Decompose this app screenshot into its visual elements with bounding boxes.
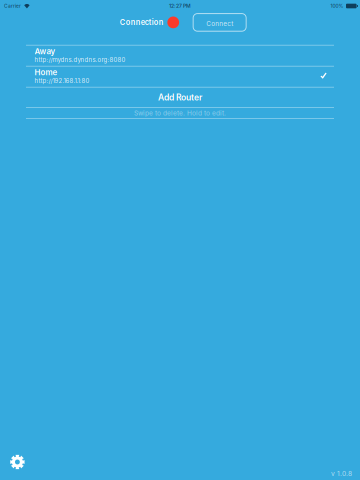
button[interactable]: Connect — [193, 14, 246, 31]
staticText: Away — [34, 46, 55, 56]
button[interactable]: Away — [26, 46, 334, 66]
staticText: Home — [34, 67, 57, 77]
staticText: http://mydns.dyndns.org:8080 — [34, 56, 125, 63]
staticText: 100% — [330, 3, 343, 9]
staticText: Carrier — [4, 3, 21, 9]
staticText: Add Router — [158, 92, 202, 102]
staticText: Swipe to delete. Hold to edit. — [134, 109, 226, 117]
staticText: 12:27 PM — [169, 3, 191, 9]
button[interactable]: Settings — [10, 455, 25, 469]
button[interactable]: Home — [26, 67, 334, 87]
staticText: http://192.168.1.1:80 — [34, 77, 89, 84]
staticText: Connection — [120, 18, 164, 27]
staticText: Connect — [206, 20, 233, 27]
staticText: v 1.0.8 — [331, 469, 352, 478]
button[interactable]: Add Router — [26, 88, 334, 107]
